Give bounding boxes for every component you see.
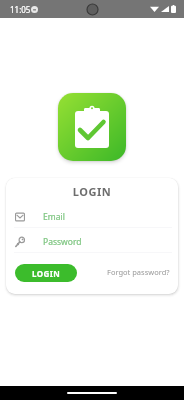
staticText: Forgot password? [107, 267, 170, 277]
staticText: Password [43, 236, 82, 248]
staticText: LOGIN [6, 184, 178, 199]
staticText: Email [43, 211, 65, 223]
button[interactable]: Password [6, 235, 178, 249]
staticText: 11:05 [10, 4, 31, 15]
button[interactable]: Forgot password? [105, 265, 172, 279]
button[interactable]: Email [6, 210, 178, 224]
staticText: LOGIN [32, 268, 61, 279]
other: Home [67, 392, 117, 394]
button[interactable]: LOGIN [15, 264, 77, 282]
